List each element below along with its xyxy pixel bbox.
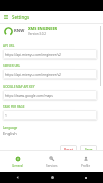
button[interactable]: https://api.mienyu.com/engineer/v2 [3, 69, 97, 79]
staticText: Profile [81, 164, 91, 168]
button[interactable]: Profile [69, 151, 103, 172]
staticText: API URL [3, 44, 15, 48]
staticText: English [3, 131, 17, 136]
staticText: Version 3.0.2 [28, 32, 47, 36]
staticText: Services [46, 164, 58, 168]
staticText: https://api.mienyu.com/engineer/v2 [5, 52, 61, 56]
staticText: XMS ENGINEER [28, 26, 58, 31]
staticText: Reset [64, 147, 73, 152]
button[interactable]: 1 [3, 110, 97, 120]
staticText: https://api.mienyu.com/engineer/v2 [5, 72, 61, 76]
button[interactable]: Save [80, 145, 97, 154]
staticText: RNW [14, 28, 25, 34]
staticText: Save [85, 147, 93, 152]
button[interactable]: Services [35, 151, 69, 172]
staticText: General [12, 164, 24, 168]
button[interactable]: Reset [60, 145, 77, 154]
staticText: GOOGLE MAP API KEY [3, 85, 35, 89]
button[interactable]: https://www.google.com/maps [3, 90, 97, 100]
staticText: 1 [5, 113, 7, 117]
staticText: SERVER URL [3, 64, 21, 68]
staticText: https://www.google.com/maps [5, 93, 53, 97]
button[interactable]: General [0, 151, 35, 172]
staticText: Settings [12, 14, 30, 20]
staticText: Language [3, 126, 18, 130]
staticText: TASK PER PAGE [3, 105, 25, 109]
button[interactable]: https://api.mienyu.com/engineer/v2 [3, 49, 97, 59]
button[interactable]: Menu [0, 11, 12, 23]
